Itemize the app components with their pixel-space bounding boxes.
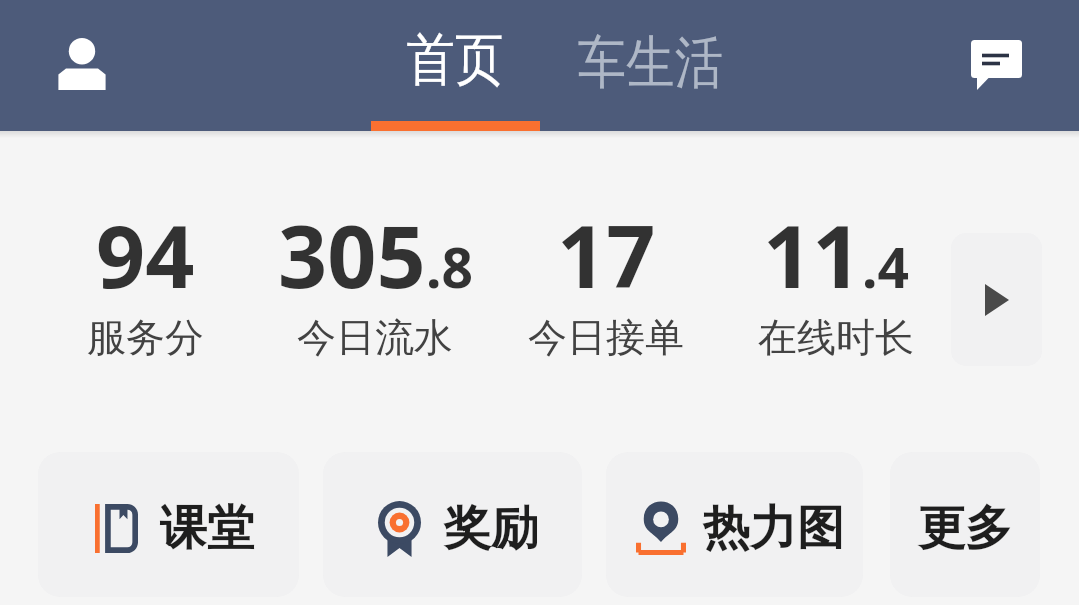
staticText: 305	[278, 196, 426, 313]
button[interactable]: 17	[456, 194, 756, 374]
staticText: 94	[96, 196, 195, 313]
button[interactable]: 奖励	[323, 452, 582, 597]
button[interactable]: Profile	[46, 26, 118, 98]
button[interactable]: Messages	[960, 29, 1032, 101]
button[interactable]: 305	[225, 194, 525, 374]
button[interactable]: 首页	[386, 19, 524, 101]
button[interactable]: 11	[686, 194, 986, 374]
staticText: 17	[557, 196, 656, 313]
button[interactable]: 课堂	[38, 452, 299, 597]
staticText: 更多	[918, 499, 1012, 558]
button[interactable]: 热力图	[606, 452, 863, 597]
staticText: 课堂	[160, 499, 254, 558]
button[interactable]: 车生活	[557, 22, 743, 104]
button[interactable]: 更多	[890, 452, 1040, 597]
staticText: 11	[763, 196, 862, 313]
staticText: .8	[426, 229, 473, 304]
staticText: .4	[862, 229, 909, 304]
staticText: 服务分	[87, 313, 204, 362]
staticText: 首页	[406, 24, 503, 96]
button[interactable]: Play	[951, 233, 1042, 366]
staticText: 今日流水	[297, 313, 453, 362]
staticText: 在线时长	[758, 313, 914, 362]
button[interactable]: 94	[0, 194, 295, 374]
staticText: 今日接单	[528, 313, 684, 362]
staticText: 奖励	[444, 499, 538, 558]
staticText: 车生活	[578, 27, 723, 99]
staticText: 热力图	[703, 499, 844, 558]
